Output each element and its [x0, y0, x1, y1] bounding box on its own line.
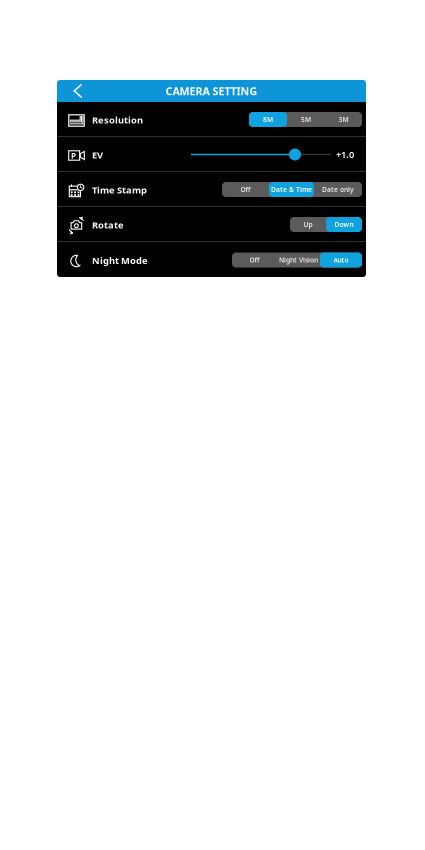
button[interactable]: Down: [326, 217, 362, 232]
button[interactable]: Back: [57, 80, 93, 102]
staticText: EV: [92, 149, 103, 161]
staticText: Date & Time: [271, 185, 312, 194]
staticText: 5M: [301, 115, 311, 124]
button[interactable]: P: [57, 137, 366, 171]
button[interactable]: Date & Time: [269, 182, 314, 197]
staticText: 3M: [338, 115, 348, 124]
staticText: Night Mode: [92, 254, 148, 267]
button[interactable]: Night Mode: [57, 242, 366, 277]
button[interactable]: Night Vision: [277, 252, 320, 267]
staticText: 8M: [263, 115, 273, 124]
staticText: Resolution: [92, 114, 143, 126]
staticText: Off: [249, 256, 259, 264]
staticText: P: [71, 150, 76, 161]
button[interactable]: Up: [290, 217, 326, 232]
staticText: Time Stamp: [92, 184, 147, 196]
button[interactable]: 5M: [287, 112, 325, 127]
staticText: CAMERA SETTING: [165, 84, 257, 98]
staticText: Up: [303, 220, 312, 229]
staticText: Rotate: [92, 219, 124, 231]
staticText: +1.0: [336, 148, 354, 161]
button[interactable]: 8M: [249, 112, 287, 127]
staticText: Auto: [333, 256, 348, 264]
button[interactable]: 3M: [325, 112, 362, 127]
staticText: Down: [334, 220, 353, 229]
button[interactable]: Resolution: [57, 102, 366, 136]
button[interactable]: Time Stamp: [57, 172, 366, 206]
button[interactable]: Date only: [314, 182, 362, 197]
button[interactable]: Rotate: [57, 207, 366, 241]
button[interactable]: Off: [222, 182, 269, 197]
button[interactable]: Auto: [320, 252, 362, 267]
staticText: Night Vision: [279, 256, 318, 264]
staticText: Off: [240, 185, 250, 194]
staticText: Date only: [322, 185, 354, 194]
button[interactable]: Off: [232, 252, 277, 267]
